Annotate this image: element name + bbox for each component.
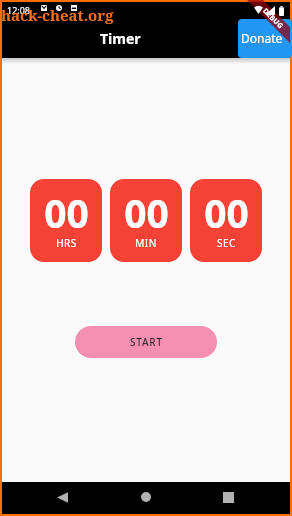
button[interactable]: 00 (30, 179, 102, 262)
staticText: MIN (135, 236, 157, 250)
staticText: SEC (217, 236, 236, 250)
button[interactable]: Back (46, 481, 79, 513)
staticText: 00 (44, 186, 89, 239)
staticText: Timer (100, 29, 141, 48)
button[interactable]: Recents (212, 481, 245, 513)
button[interactable]: Home (129, 481, 162, 513)
button[interactable]: Donate (238, 19, 292, 58)
staticText: DEBUG (260, 6, 286, 32)
staticText: HRS (56, 236, 77, 250)
staticText: 00 (124, 186, 169, 239)
button[interactable]: 00 (190, 179, 262, 262)
staticText: 12:08 (7, 4, 31, 16)
staticText: START (130, 335, 163, 349)
staticText: Donate (241, 30, 283, 46)
button[interactable]: 00 (110, 179, 182, 262)
button[interactable]: START (75, 326, 217, 358)
staticText: 00 (204, 186, 249, 239)
staticText: hack-cheat.org (1, 5, 114, 25)
